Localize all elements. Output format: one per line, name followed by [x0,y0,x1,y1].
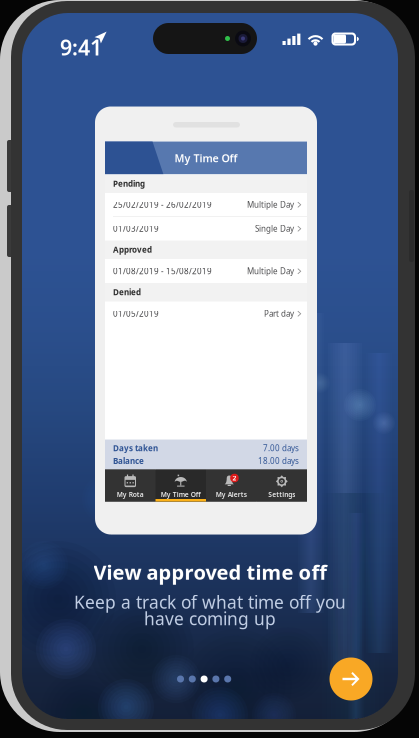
staticText: 2 [232,474,236,482]
button[interactable]: 2 [206,469,256,501]
staticText: My Alerts [216,490,247,499]
staticText: My Time Off [161,490,201,499]
staticText: Keep a track of what time off you [74,590,346,613]
staticText: 9:41 [60,33,102,61]
staticText: My Rota [117,490,144,499]
staticText: Multiple Day [247,266,294,276]
button[interactable]: 25/02/2019 - 26/02/2019 [105,193,307,216]
button[interactable]: 01/03/2019 [105,217,307,240]
staticText: 01/08/2019 - 15/08/2019 [113,266,212,276]
staticText: Settings [268,490,295,499]
staticText: Approved [113,244,152,255]
button[interactable]: My Time Off [155,469,206,501]
staticText: Single Day [255,223,294,234]
staticText: 18.00 days [258,455,299,466]
staticText: Part day [264,308,294,319]
staticText: My Time Off [174,151,237,165]
staticText: Days taken [113,443,158,453]
staticText: 25/02/2019 - 26/02/2019 [113,199,212,210]
staticText: 01/05/2019 [113,308,159,319]
button[interactable]: 01/05/2019 [105,302,307,325]
staticText: 01/03/2019 [113,223,159,234]
button[interactable]: My Rota [105,469,155,501]
staticText: have coming up [144,607,276,630]
staticText: Balance [113,455,144,466]
button[interactable]: Settings [256,469,307,501]
staticText: Multiple Day [247,199,294,210]
staticText: Denied [113,287,141,297]
staticText: 7.00 days [263,443,299,453]
staticText: Pending [113,178,145,189]
button[interactable]: 01/08/2019 - 15/08/2019 [105,259,307,283]
staticText: View approved time off [93,559,326,585]
button[interactable]: Next [329,657,372,700]
